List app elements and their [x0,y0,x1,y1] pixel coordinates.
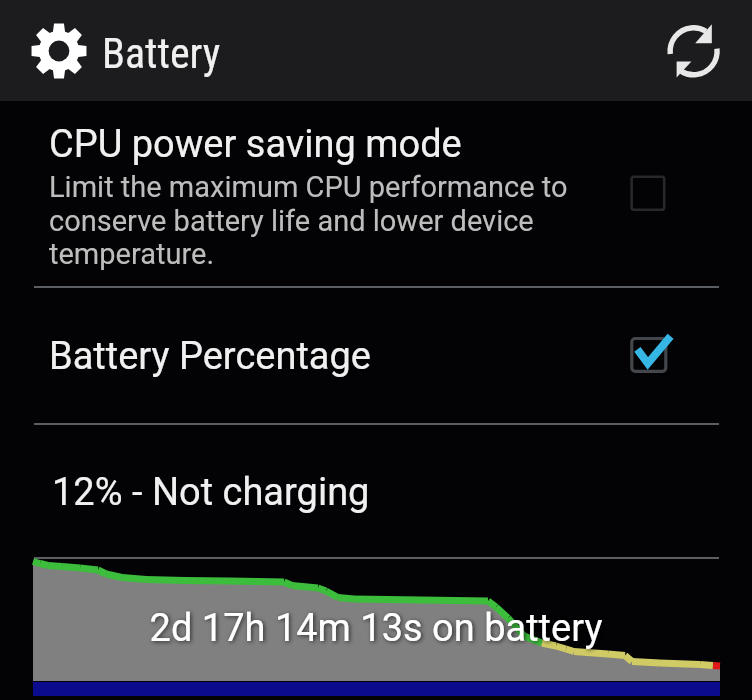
button[interactable]: CPU power saving mode [0,101,752,286]
button[interactable]: 12% - Not charging [0,425,752,558]
staticText: 2d 17h 14m 13s on battery [0,606,752,651]
button[interactable]: Settings [31,23,87,79]
staticText: Battery [102,29,221,78]
staticText: Battery Percentage [49,334,371,379]
button[interactable]: Refresh [665,22,723,80]
staticText: 12% - Not charging [52,470,370,515]
button[interactable]: Battery percentage toggle [626,330,674,378]
staticText: Limit the maximum CPU performance to con… [49,170,568,271]
staticText: CPU power saving mode [49,122,462,167]
button[interactable]: Battery Percentage [0,288,752,423]
button[interactable]: CPU power saving mode toggle [626,172,666,212]
